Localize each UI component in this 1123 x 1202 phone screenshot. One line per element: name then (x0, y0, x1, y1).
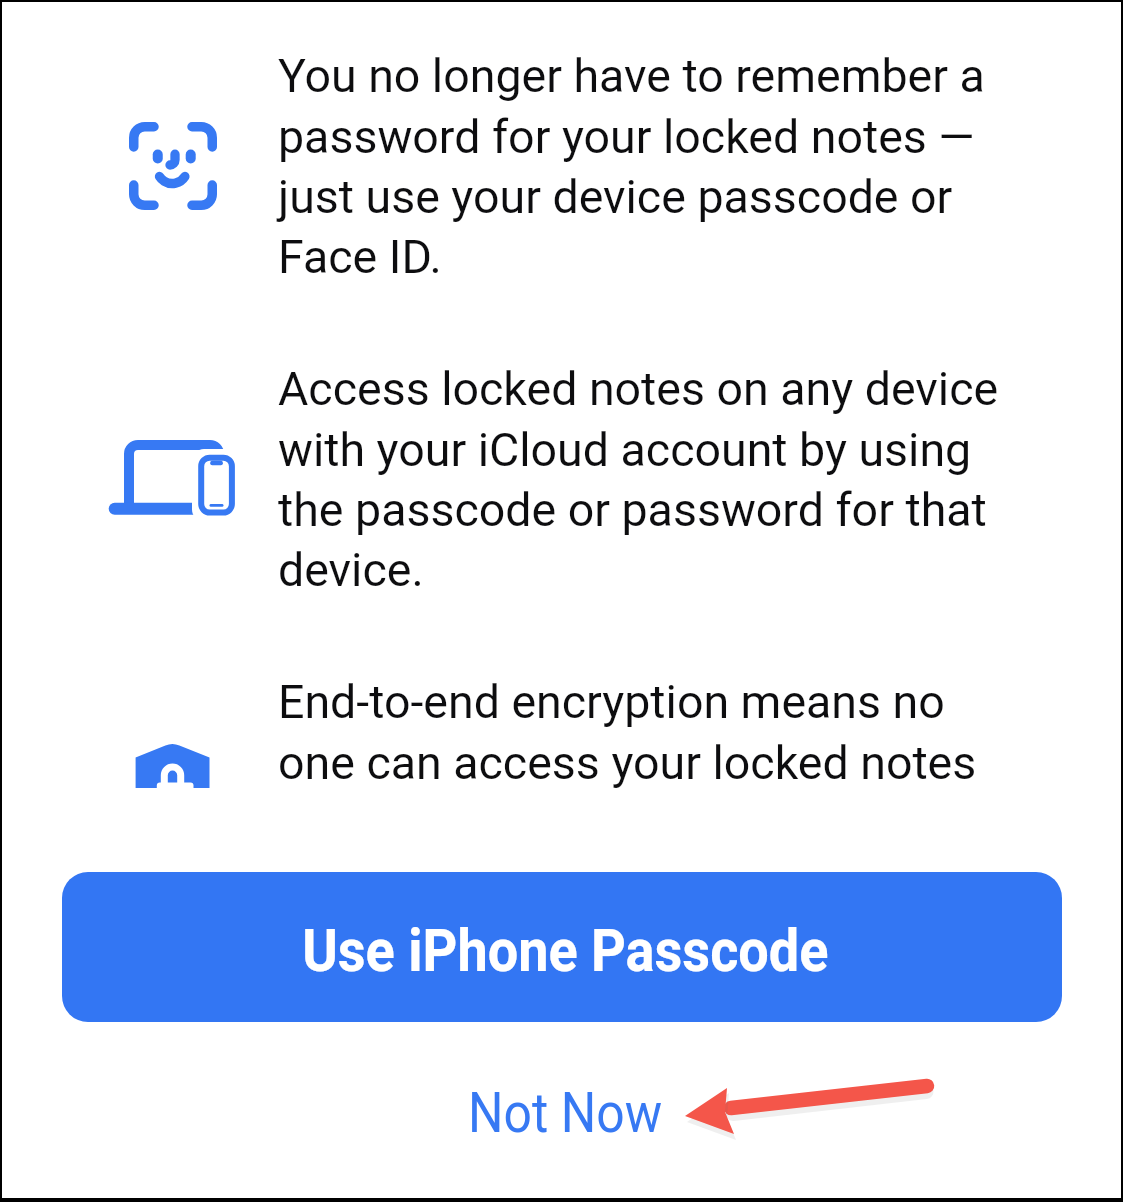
staticText: Access locked notes on any device with y… (278, 362, 999, 597)
staticText: You no longer have to remember a passwor… (278, 49, 985, 284)
button[interactable]: Not Now (468, 1080, 663, 1146)
staticText: End-to-end encryption means no one can a… (278, 675, 977, 790)
staticText: Use iPhone Passcode (302, 915, 829, 985)
button[interactable]: Use iPhone Passcode (62, 872, 1062, 1022)
